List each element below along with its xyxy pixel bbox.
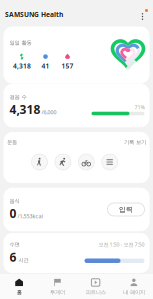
staticText: 입력: [119, 205, 133, 214]
staticText: 음식: [9, 198, 19, 204]
button[interactable]: 기록 보기: [124, 139, 146, 146]
staticText: 수면: [9, 241, 19, 248]
button[interactable]: 피트니스: [76, 274, 115, 299]
staticText: 4,318: [13, 62, 31, 70]
button[interactable]: 자전거: [78, 154, 94, 170]
staticText: 운동: [7, 139, 17, 146]
button[interactable]: 걸음 수: [3, 84, 149, 127]
button[interactable]: 수면: [3, 233, 149, 273]
button[interactable]: 걷기: [31, 154, 47, 170]
staticText: 0: [9, 205, 16, 221]
staticText: 시간: [16, 257, 28, 264]
staticText: 오전 1:50 - 오전 7:50: [98, 241, 144, 248]
button[interactable]: 더 보기: [137, 8, 148, 21]
staticText: /1,553kcal: [16, 213, 42, 220]
button[interactable]: 내 페이지: [115, 274, 153, 299]
staticText: 71%: [134, 104, 144, 111]
button[interactable]: 음식: [3, 188, 149, 231]
staticText: SAMSUNG Health: [5, 10, 63, 19]
staticText: 홈: [17, 289, 22, 296]
staticText: 41: [41, 62, 49, 70]
button[interactable]: 홈: [0, 274, 38, 299]
staticText: 투게더: [50, 289, 65, 296]
staticText: 걸음 수: [9, 94, 26, 100]
button[interactable]: 투게더: [38, 274, 76, 299]
staticText: 일일 활동: [9, 39, 31, 46]
button[interactable]: 일일 활동: [3, 26, 149, 83]
button[interactable]: 달리기: [55, 154, 71, 170]
button[interactable]: 더 보기: [102, 154, 118, 170]
staticText: 157: [61, 62, 73, 70]
staticText: 6: [9, 249, 16, 265]
button[interactable]: 입력: [107, 203, 144, 216]
staticText: 내 페이지: [123, 289, 145, 296]
staticText: 피트니스: [86, 289, 106, 296]
staticText: /6,000: [40, 109, 56, 116]
staticText: 4,318: [9, 101, 40, 117]
staticText: 기록 보기: [124, 139, 146, 146]
